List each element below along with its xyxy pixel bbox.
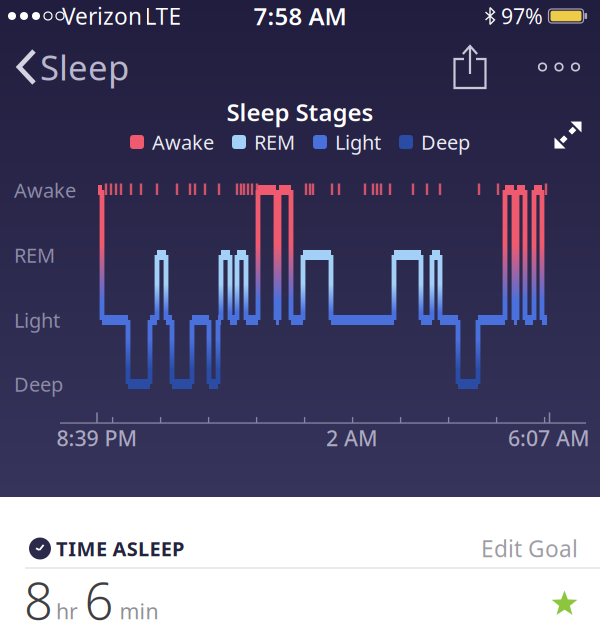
staticText: REM: [14, 242, 55, 268]
staticText: REM: [254, 129, 295, 155]
staticText: Edit Goal: [481, 533, 578, 563]
staticText: min: [119, 597, 158, 625]
staticText: Light: [14, 307, 60, 333]
button[interactable]: [554, 121, 581, 148]
staticText: Deep: [421, 129, 470, 155]
button[interactable]: Edit Goal: [458, 533, 578, 563]
staticText: hr: [56, 597, 78, 625]
staticText: 7:58 AM: [253, 0, 346, 32]
staticText: LTE: [144, 1, 181, 31]
staticText: 6:07 AM: [508, 424, 590, 452]
staticText: 2 AM: [326, 424, 378, 452]
staticText: Light: [335, 129, 381, 155]
staticText: 6: [84, 566, 113, 634]
staticText: Sleep: [40, 44, 129, 90]
staticText: Awake: [152, 129, 214, 155]
staticText: TIME ASLEEP: [56, 535, 184, 562]
button[interactable]: [454, 46, 485, 88]
staticText: 8: [24, 566, 53, 634]
staticText: 97%: [501, 2, 543, 30]
staticText: Deep: [14, 371, 63, 397]
staticText: 8:39 PM: [56, 424, 137, 452]
staticText: Awake: [14, 177, 76, 203]
button[interactable]: Sleep: [19, 44, 129, 90]
staticText: Verizon: [62, 1, 142, 31]
staticText: Sleep Stages: [226, 96, 373, 128]
button[interactable]: [539, 63, 579, 71]
